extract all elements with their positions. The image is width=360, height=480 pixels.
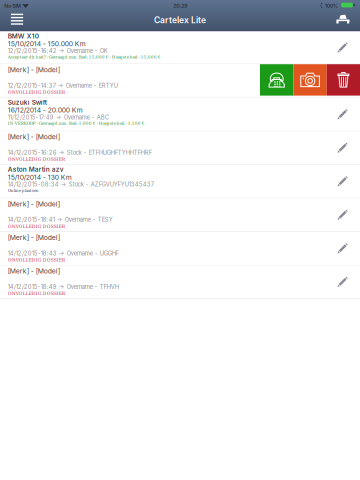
staticText: [Merk] - [Model] xyxy=(8,66,60,74)
staticText: Suzuki Swift xyxy=(8,98,47,106)
button[interactable]: Call xyxy=(260,64,293,96)
staticText: IN VERKOOP - Gevraagd min. Bod: 1.000 € … xyxy=(8,121,145,126)
button[interactable]: [Merk] - [Model] xyxy=(0,232,360,265)
staticText: ONVOLLEDIG DOSSIER xyxy=(8,291,65,296)
button[interactable]: Take photo xyxy=(293,64,327,96)
staticText: 12/12/2015-14:37 -> Overname - ERTYU xyxy=(8,82,118,89)
staticText: 14/12/2015-18:49 -> Overname - TFHVH xyxy=(8,283,119,290)
staticText: No SIM xyxy=(4,3,21,9)
staticText: 20:29 xyxy=(173,3,187,9)
staticText: 15/10/2014 - 130 Km xyxy=(8,173,72,181)
staticText: [Merk] - [Model] xyxy=(8,200,60,208)
button[interactable]: [Merk] - [Model] xyxy=(0,198,360,231)
button[interactable]: Aston Martin azv xyxy=(0,165,360,198)
staticText: 15/10/2014 - 150.000 Km xyxy=(8,40,86,48)
staticText: BMW X10 xyxy=(8,32,39,40)
staticText: [Merk] - [Model] xyxy=(8,233,60,242)
button[interactable]: [Merk] - [Model] xyxy=(0,64,360,97)
staticText: Cartelex Lite xyxy=(154,15,206,25)
staticText: 16/12/2014 - 20.000 Km xyxy=(8,106,83,114)
button[interactable]: BMW X10 xyxy=(0,31,360,64)
staticText: ONVOLLEDIG DOSSIER xyxy=(8,157,65,162)
staticText: ONVOLLEDIG DOSSIER xyxy=(8,89,65,95)
button[interactable]: Menu xyxy=(5,11,29,27)
button[interactable]: [Merk] - [Model] xyxy=(0,131,360,164)
staticText: Aston Martin azv xyxy=(8,165,64,173)
button[interactable]: Delete xyxy=(327,64,360,96)
staticText: [Merk] - [Model] xyxy=(8,267,60,275)
button[interactable]: [Merk] - [Model] xyxy=(0,265,360,298)
staticText: 100% xyxy=(325,3,338,9)
staticText: 14/12/2015-16:26 -> Stock - ETFHUGHFTYHH… xyxy=(8,149,152,156)
staticText: 11/12/2015-17:49 -> Overname - ABC xyxy=(8,114,109,121)
button[interactable]: Suzuki Swift xyxy=(0,98,360,131)
staticText: Online plaatsen xyxy=(8,188,39,193)
staticText: 14/12/2015-18:43 -> Overname - UGGHF xyxy=(8,250,119,257)
staticText: [Merk] - [Model] xyxy=(8,133,60,141)
staticText: ONVOLLEDIG DOSSIER xyxy=(8,257,65,262)
staticText: Accepteer dit bod? - Gevraagd min. Bod: … xyxy=(8,55,161,59)
staticText: 14/12/2015-08:34 -> Stock - AZFGVUYFYU13… xyxy=(8,181,154,188)
staticText: ONVOLLEDIG DOSSIER xyxy=(8,224,65,229)
staticText: 14/12/2015-18:41 -> Overname - TESY xyxy=(8,216,113,223)
button[interactable]: Add vehicle xyxy=(331,11,355,27)
staticText: 12/12/2015-16:42 -> Overname - OK xyxy=(8,47,108,54)
